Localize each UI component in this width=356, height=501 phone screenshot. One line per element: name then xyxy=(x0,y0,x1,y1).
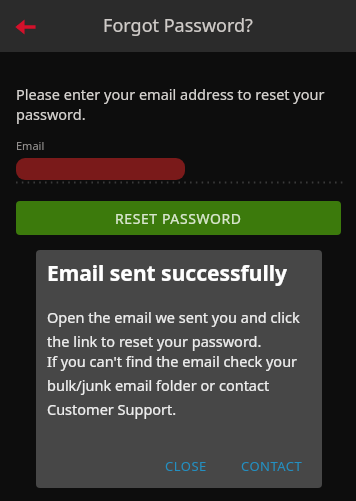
button[interactable]: RESET PASSWORD xyxy=(16,201,341,235)
staticText: RESET PASSWORD xyxy=(115,209,242,228)
button[interactable] xyxy=(16,158,341,184)
staticText: Forgot Password? xyxy=(103,13,253,38)
staticText: CLOSE xyxy=(165,457,207,475)
staticText: Email xyxy=(16,138,45,153)
button[interactable]: CONTACT xyxy=(232,450,312,482)
staticText: Open the email we sent you and click the… xyxy=(47,307,311,351)
staticText: Please enter your email address to reset… xyxy=(16,84,341,124)
staticText: Email sent successfully xyxy=(47,259,287,288)
button[interactable]: CLOSE xyxy=(156,450,216,482)
button[interactable]: Back xyxy=(8,10,42,44)
staticText: CONTACT xyxy=(241,457,303,475)
staticText: If you can't find the email check your b… xyxy=(47,351,311,419)
